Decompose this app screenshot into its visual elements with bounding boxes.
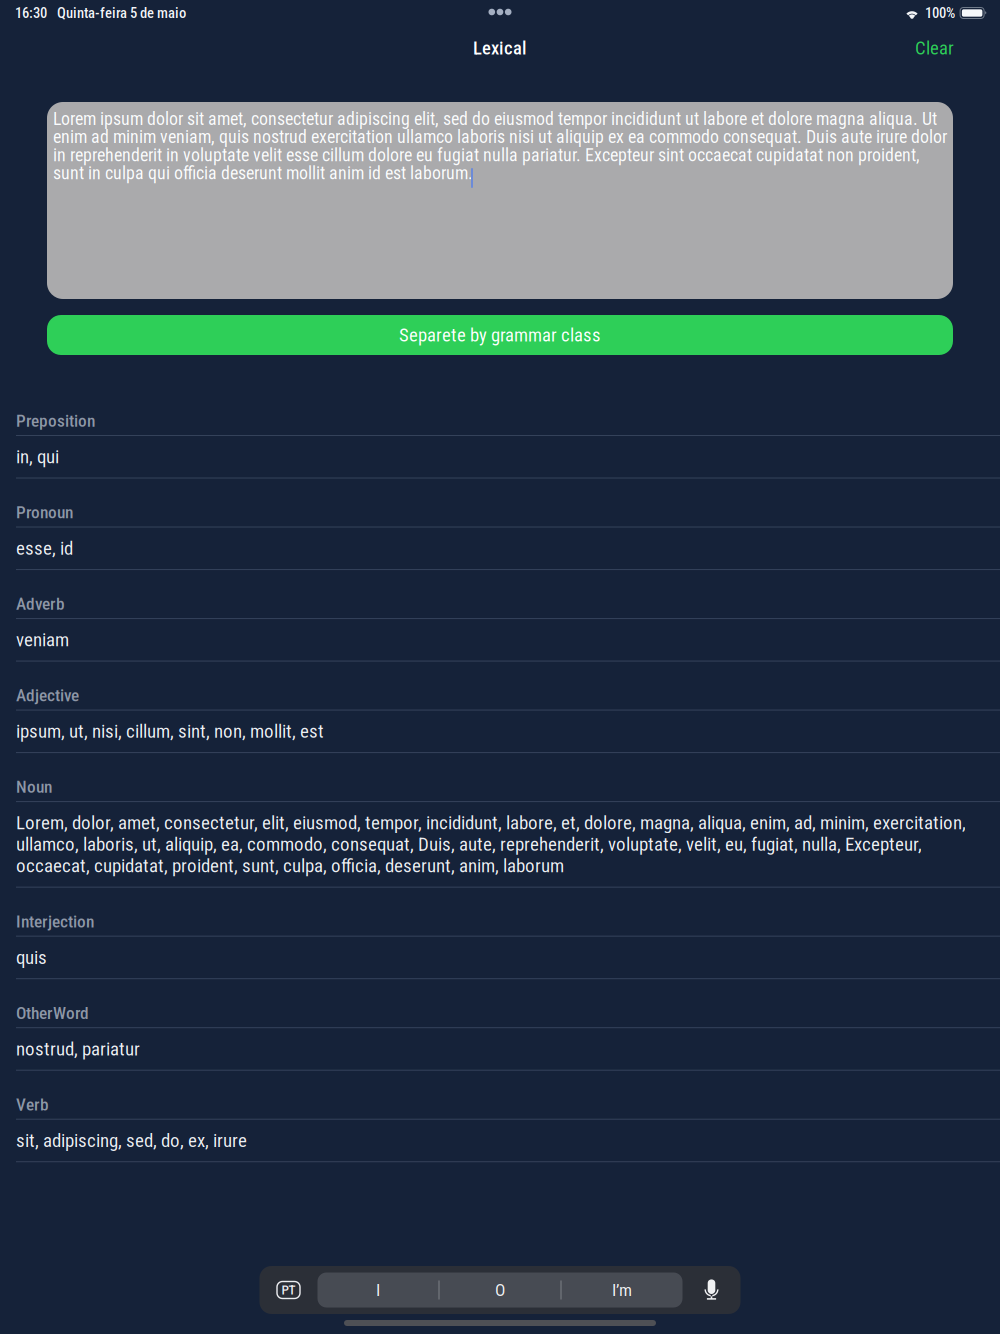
staticText: Pronoun — [16, 502, 73, 522]
staticText: Adjective — [16, 685, 79, 706]
staticText: quis — [16, 947, 47, 968]
staticText: 100% — [925, 4, 955, 22]
staticText: Noun — [16, 777, 52, 797]
button[interactable]: esse, id — [0, 527, 1000, 569]
button[interactable]: Lorem, dolor, amet, consectetur, elit, e… — [0, 802, 1000, 887]
button[interactable]: Dictate — [682, 1266, 740, 1314]
staticText: Quinta-feira 5 de maio — [57, 4, 186, 22]
button[interactable]: Keyboard language — [259, 1266, 317, 1314]
button[interactable]: quis — [0, 937, 1000, 978]
button[interactable]: I’m — [561, 1272, 682, 1307]
button[interactable]: in, qui — [0, 436, 1000, 477]
staticText: Lorem ipsum dolor sit amet, consectetur … — [53, 110, 947, 182]
staticText: Interjection — [16, 911, 94, 932]
staticText: sit, adipiscing, sed, do, ex, irure — [16, 1130, 247, 1151]
staticText: Lorem, dolor, amet, consectetur, elit, e… — [16, 812, 966, 877]
staticText: veniam — [16, 629, 69, 650]
staticText: 16:30 — [15, 4, 47, 22]
staticText: Adverb — [16, 594, 65, 614]
staticText: I — [376, 1280, 380, 1300]
button[interactable]: Clear — [903, 28, 966, 68]
staticText: Preposition — [16, 411, 95, 431]
staticText: O — [495, 1280, 505, 1300]
staticText: Clear — [915, 37, 954, 59]
staticText: nostrud, pariatur — [16, 1038, 140, 1060]
staticText: Lexical — [473, 37, 527, 59]
staticText: Verb — [16, 1094, 49, 1115]
staticText: OtherWord — [16, 1003, 89, 1023]
staticText: Separete by grammar class — [399, 324, 601, 346]
button[interactable]: O — [439, 1272, 560, 1307]
button[interactable]: sit, adipiscing, sed, do, ex, irure — [0, 1120, 1000, 1161]
staticText: I’m — [612, 1280, 632, 1300]
staticText: in, qui — [16, 446, 59, 467]
button[interactable]: ipsum, ut, nisi, cillum, sint, non, moll… — [0, 711, 1000, 752]
staticText: esse, id — [16, 537, 73, 559]
button[interactable]: nostrud, pariatur — [0, 1028, 1000, 1070]
button[interactable]: I — [317, 1272, 438, 1307]
button[interactable]: veniam — [0, 619, 1000, 660]
staticText: ipsum, ut, nisi, cillum, sint, non, moll… — [16, 721, 324, 742]
staticText: PT — [281, 1282, 295, 1298]
button[interactable]: Separete by grammar class — [47, 315, 953, 355]
